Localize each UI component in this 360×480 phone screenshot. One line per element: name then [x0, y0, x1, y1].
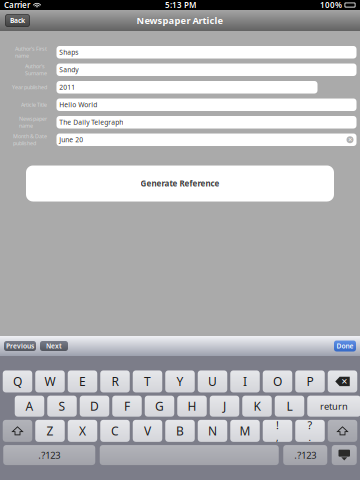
- staticText: Article Title: [21, 101, 47, 108]
- button[interactable]: T: [133, 370, 162, 392]
- staticText: Back: [10, 16, 25, 25]
- staticText: Done: [336, 342, 353, 350]
- button[interactable]: Shift: [3, 420, 32, 442]
- staticText: ✕: [341, 377, 348, 386]
- staticText: S: [58, 398, 65, 414]
- staticText: .?123: [294, 449, 316, 461]
- button[interactable]: Shaps: [56, 46, 356, 58]
- staticText: 100%: [320, 0, 342, 10]
- button[interactable]: H: [177, 396, 207, 417]
- staticText: .: [308, 431, 311, 444]
- staticText: .?123: [38, 449, 60, 461]
- staticText: U: [208, 373, 217, 389]
- staticText: The Daily Telegraph: [59, 118, 123, 127]
- staticText: I: [243, 373, 247, 389]
- staticText: ,: [276, 431, 279, 444]
- button[interactable]: P: [295, 370, 325, 392]
- staticText: R: [111, 373, 118, 389]
- staticText: Author's First name: [15, 45, 47, 59]
- staticText: G: [155, 398, 164, 414]
- button[interactable]: E: [68, 370, 97, 392]
- staticText: F: [124, 398, 130, 414]
- staticText: Previous: [6, 342, 34, 350]
- button[interactable]: S: [47, 396, 77, 417]
- staticText: Y: [176, 373, 183, 389]
- button[interactable]: F: [112, 396, 142, 417]
- button[interactable]: .?123: [283, 445, 327, 465]
- staticText: Newspaper name: [19, 115, 47, 129]
- staticText: M: [239, 423, 250, 439]
- staticText: A: [25, 398, 33, 414]
- staticText: Hello World: [59, 100, 97, 109]
- staticText: J: [223, 398, 226, 414]
- button[interactable]: K: [242, 396, 272, 417]
- staticText: V: [144, 423, 151, 439]
- staticText: 2011: [59, 83, 75, 92]
- staticText: Shaps: [59, 48, 78, 57]
- button[interactable]: Previous: [4, 341, 36, 351]
- button[interactable]: W: [35, 370, 65, 392]
- staticText: L: [286, 398, 292, 414]
- button[interactable]: U: [198, 370, 227, 392]
- button[interactable]: O: [263, 370, 292, 392]
- staticText: C: [111, 423, 119, 439]
- button[interactable]: M: [230, 420, 260, 442]
- staticText: H: [187, 398, 196, 414]
- staticText: Z: [46, 423, 53, 439]
- button[interactable]: 2011: [56, 81, 317, 93]
- button[interactable]: A: [15, 396, 44, 417]
- button[interactable]: Y: [165, 370, 195, 392]
- button[interactable]: N: [198, 420, 227, 442]
- button[interactable]: Hello World: [56, 98, 356, 111]
- button[interactable]: ?: [295, 420, 325, 442]
- button[interactable]: J: [210, 396, 239, 417]
- button[interactable]: I: [230, 370, 260, 392]
- button[interactable]: return: [307, 396, 360, 417]
- staticText: return: [320, 400, 348, 412]
- button[interactable]: Shift: [328, 420, 357, 442]
- staticText: E: [79, 373, 86, 389]
- button[interactable]: !: [263, 420, 292, 442]
- button[interactable]: C: [100, 420, 130, 442]
- button[interactable]: Z: [35, 420, 65, 442]
- button[interactable]: June 20: [56, 133, 356, 146]
- button[interactable]: .?123: [3, 445, 95, 465]
- staticText: B: [176, 423, 184, 439]
- staticText: [188, 447, 191, 463]
- staticText: D: [90, 398, 99, 414]
- staticText: !: [276, 418, 279, 432]
- staticText: P: [306, 373, 313, 389]
- staticText: N: [208, 423, 217, 439]
- staticText: O: [273, 373, 282, 389]
- staticText: Carrier: [4, 0, 30, 10]
- staticText: 5:13 PM: [165, 0, 196, 10]
- staticText: K: [253, 398, 260, 414]
- staticText: Sandy: [59, 65, 78, 74]
- button[interactable]: X: [68, 420, 97, 442]
- staticText: June 20: [59, 135, 83, 144]
- button[interactable]: Q: [3, 370, 32, 392]
- staticText: W: [44, 373, 55, 389]
- button[interactable]: R: [100, 370, 130, 392]
- staticText: Next: [46, 342, 62, 350]
- button[interactable]: L: [275, 396, 304, 417]
- button[interactable]: Sandy: [56, 63, 356, 76]
- staticText: Q: [13, 373, 22, 389]
- staticText: ?: [307, 418, 312, 432]
- staticText: Year published: [12, 84, 47, 91]
- button[interactable]: Generate Reference: [26, 165, 334, 201]
- button[interactable]: B: [165, 420, 195, 442]
- button[interactable]: Done: [334, 340, 356, 351]
- button[interactable]: Hide keyboard: [332, 445, 357, 465]
- button[interactable]: D: [80, 396, 109, 417]
- button[interactable]: [100, 445, 279, 465]
- button[interactable]: Delete: [328, 370, 357, 392]
- button[interactable]: Back: [5, 14, 30, 27]
- button[interactable]: G: [145, 396, 174, 417]
- button[interactable]: The Daily Telegraph: [56, 116, 356, 128]
- staticText: Generate Reference: [140, 178, 219, 189]
- button[interactable]: V: [133, 420, 162, 442]
- staticText: T: [144, 373, 151, 389]
- button[interactable]: Next: [40, 341, 68, 351]
- staticText: Author's Surname: [25, 63, 47, 77]
